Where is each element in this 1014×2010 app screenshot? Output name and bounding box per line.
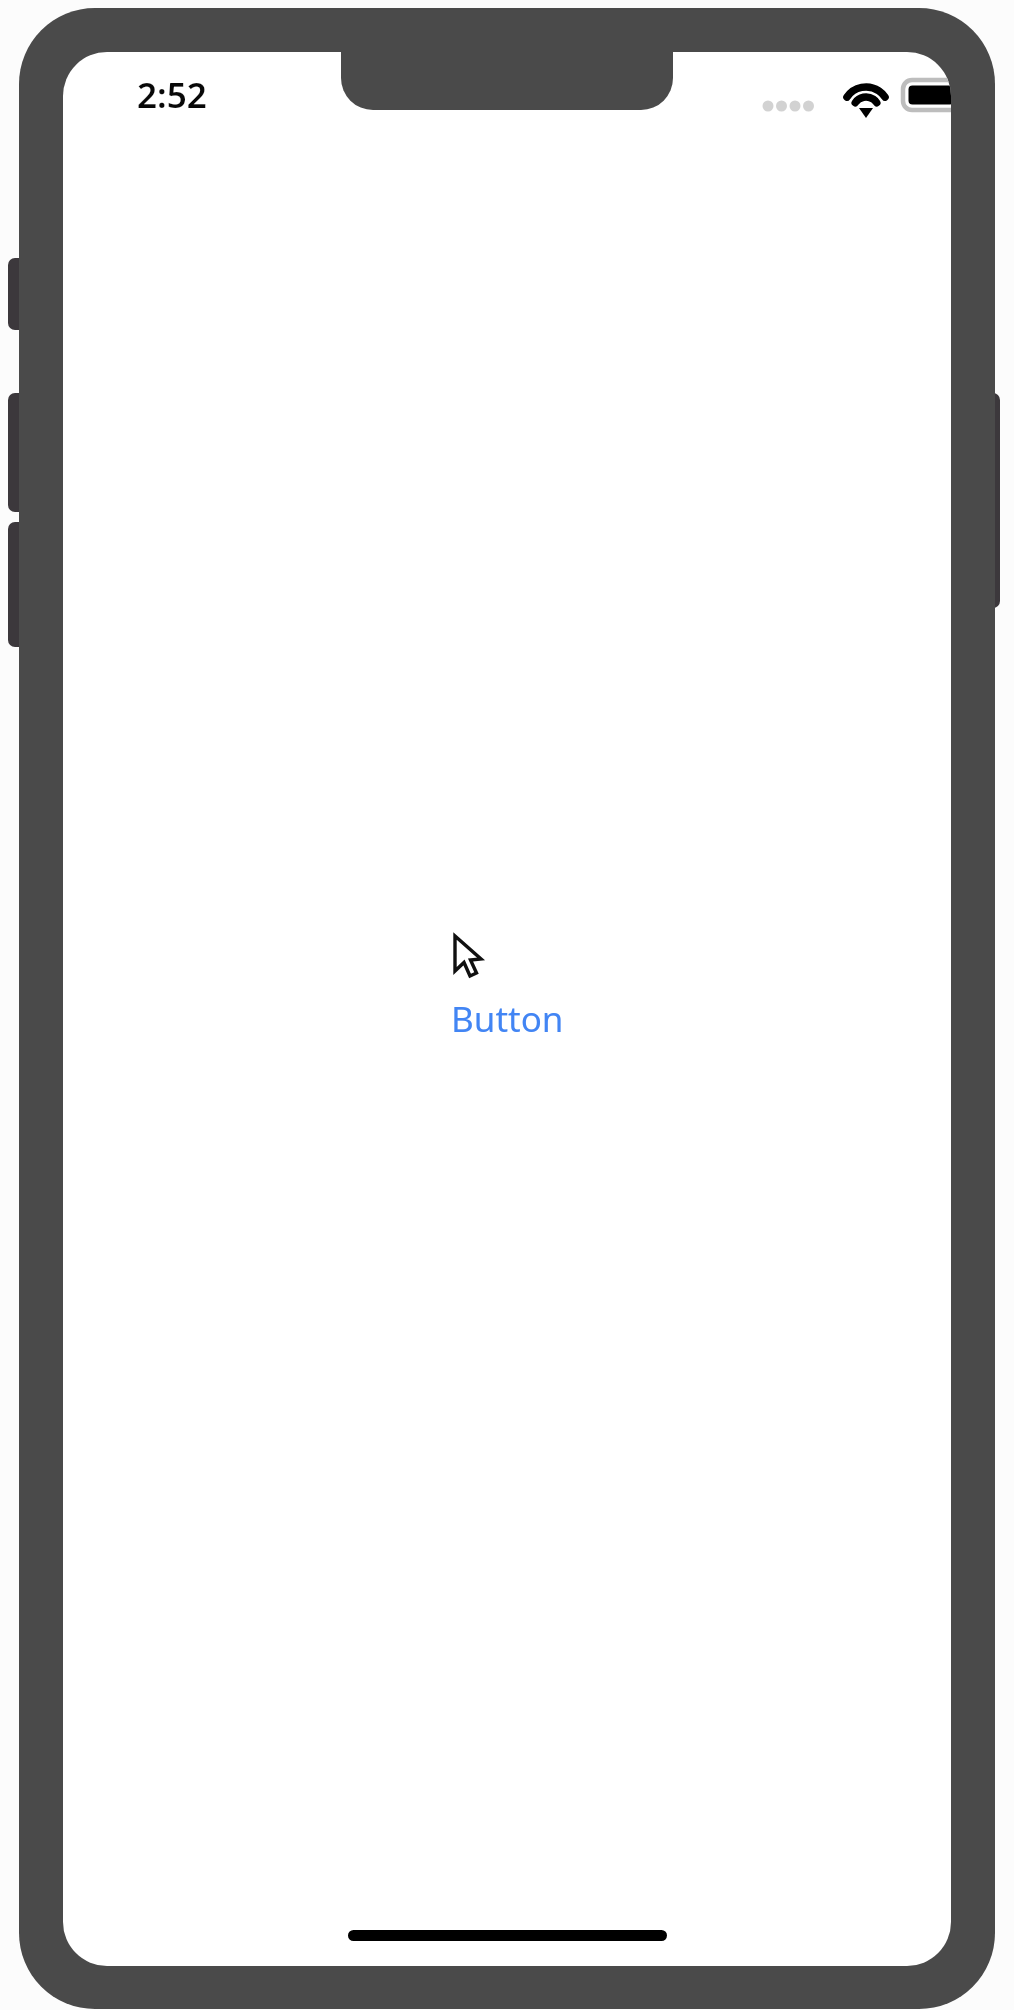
other: Silent switch [8,258,28,330]
other: Volume up [8,393,28,512]
other: Power [980,393,1000,608]
staticText: Button [451,995,564,1043]
button[interactable]: Button [439,987,576,1051]
staticText: 2:52 [137,71,207,119]
other: Volume down [8,522,28,647]
